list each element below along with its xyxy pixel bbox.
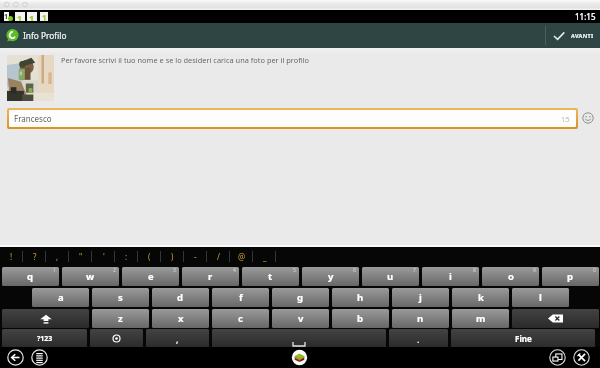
button[interactable]: Indietro	[7, 349, 24, 366]
button[interactable]: w	[62, 267, 119, 286]
button[interactable]: c	[212, 309, 269, 328]
button[interactable]: a	[32, 288, 89, 307]
button[interactable]: p	[542, 267, 599, 286]
button[interactable]: s	[92, 288, 149, 307]
button[interactable]: k	[452, 288, 509, 307]
button[interactable]: Francesco	[9, 110, 576, 127]
button[interactable]: !	[0, 247, 23, 266]
staticText: 11:15	[575, 11, 596, 22]
staticText: (	[148, 251, 151, 262]
button[interactable]: ,	[146, 329, 209, 348]
staticText: 7	[413, 267, 416, 274]
button[interactable]: Fine	[451, 329, 595, 348]
button[interactable]: Strumenti	[573, 349, 590, 366]
staticText: e	[148, 270, 154, 283]
staticText: 6	[353, 267, 356, 274]
staticText: x	[178, 312, 184, 325]
staticText: 1	[4, 12, 9, 21]
button[interactable]: Backspace	[512, 309, 599, 328]
staticText: 3	[173, 267, 176, 274]
staticText: h	[357, 291, 364, 304]
button[interactable]: f	[212, 288, 269, 307]
button[interactable]: g	[272, 288, 329, 307]
staticText: n	[417, 312, 424, 325]
staticText: _	[263, 251, 267, 262]
staticText: v	[298, 312, 304, 325]
staticText: "	[79, 251, 83, 262]
button[interactable]: Foto profilo	[7, 55, 54, 101]
button[interactable]: .	[389, 329, 448, 348]
button[interactable]: q	[2, 267, 59, 286]
staticText: /	[217, 251, 220, 262]
staticText: 8	[473, 267, 476, 274]
staticText: @	[238, 251, 246, 262]
button[interactable]: :	[115, 247, 138, 266]
button[interactable]: _	[253, 247, 276, 266]
button[interactable]: -	[184, 247, 207, 266]
staticText: 1	[42, 12, 47, 21]
button[interactable]: (	[138, 247, 161, 266]
button[interactable]: ?	[23, 247, 46, 266]
button[interactable]: Menu	[31, 349, 48, 366]
button[interactable]: o	[482, 267, 539, 286]
button[interactable]: v	[272, 309, 329, 328]
staticText: :	[125, 251, 128, 262]
button[interactable]: r	[182, 267, 239, 286]
button[interactable]: Emoji	[582, 112, 594, 124]
button[interactable]: '	[92, 247, 115, 266]
button[interactable]: z	[92, 309, 149, 328]
staticText: w	[86, 270, 95, 283]
staticText: ,	[176, 333, 179, 345]
button[interactable]: e	[122, 267, 179, 286]
button[interactable]: d	[152, 288, 209, 307]
button[interactable]: Maiuscole	[2, 309, 89, 328]
staticText: q	[27, 270, 34, 283]
staticText: i	[449, 270, 452, 283]
staticText: !	[10, 251, 13, 262]
staticText: AVANTI	[571, 32, 594, 39]
staticText: r	[208, 270, 213, 283]
staticText: 15	[561, 114, 570, 124]
button[interactable]: Spazio	[212, 329, 386, 348]
button[interactable]: @	[230, 247, 253, 266]
staticText: Francesco	[14, 113, 52, 124]
button[interactable]: ?123	[2, 329, 87, 348]
button[interactable]: Impostazioni tastiera	[90, 329, 143, 348]
staticText: y	[328, 270, 334, 283]
button[interactable]: l	[512, 288, 569, 307]
staticText: Fine	[515, 333, 532, 344]
button[interactable]: App recenti	[549, 349, 566, 366]
button[interactable]: n	[392, 309, 449, 328]
staticText: Info Profilo	[23, 30, 67, 41]
staticText: 4	[233, 267, 236, 274]
button[interactable]: j	[392, 288, 449, 307]
staticText: g	[297, 291, 304, 304]
staticText: 1	[29, 12, 35, 21]
staticText: l	[539, 291, 542, 304]
button[interactable]: m	[452, 309, 509, 328]
button[interactable]: x	[152, 309, 209, 328]
button[interactable]: t	[242, 267, 299, 286]
button[interactable]: i	[422, 267, 479, 286]
staticText: -	[194, 251, 197, 262]
button[interactable]: Info Profilo	[6, 23, 67, 48]
button[interactable]: b	[332, 309, 389, 328]
button[interactable]: u	[362, 267, 419, 286]
staticText: .	[417, 333, 420, 345]
staticText: j	[419, 291, 422, 304]
staticText: m	[476, 312, 486, 325]
staticText: z	[118, 312, 123, 325]
button[interactable]: Home	[291, 349, 308, 366]
button[interactable]: y	[302, 267, 359, 286]
button[interactable]: AVANTI	[552, 23, 594, 48]
button[interactable]: )	[161, 247, 184, 266]
button[interactable]: h	[332, 288, 389, 307]
button[interactable]: "	[69, 247, 92, 266]
staticText: 1	[17, 12, 23, 21]
staticText: 0	[593, 267, 596, 274]
staticText: k	[478, 291, 484, 304]
staticText: b	[357, 312, 364, 325]
button[interactable]: ,	[46, 247, 69, 266]
button[interactable]: /	[207, 247, 230, 266]
staticText: ,	[56, 251, 59, 262]
